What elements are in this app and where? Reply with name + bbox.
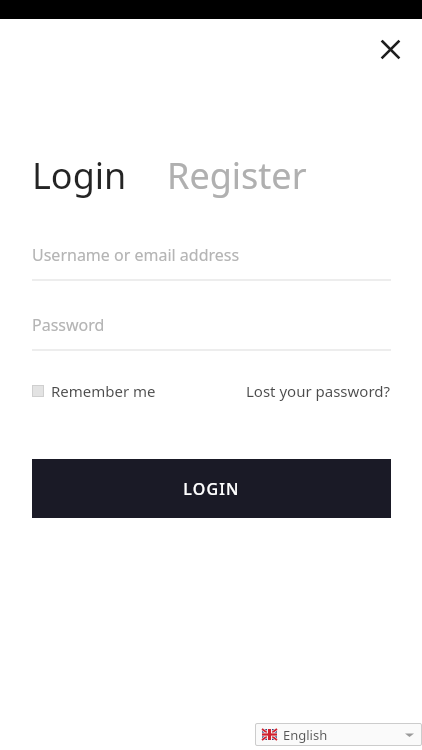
staticText: Register	[167, 151, 307, 200]
staticText: Login	[32, 151, 127, 200]
staticText: Username or email address	[32, 244, 240, 266]
staticText: English	[283, 726, 328, 744]
staticText: Remember me	[51, 381, 156, 401]
button[interactable]: Close	[370, 29, 410, 69]
staticText: Password	[32, 314, 105, 336]
button[interactable]: Login	[32, 151, 127, 200]
button[interactable]: Lost your password?	[246, 381, 391, 401]
staticText: LOGIN	[183, 478, 240, 500]
button[interactable]: LOGIN	[32, 459, 391, 518]
button[interactable]: Register	[167, 151, 307, 200]
button[interactable]: Username or email address	[32, 244, 391, 281]
button[interactable]: Password	[32, 314, 391, 351]
staticText: Lost your password?	[246, 381, 391, 401]
button[interactable]: English	[255, 723, 422, 746]
button[interactable]: Remember me	[32, 381, 156, 401]
